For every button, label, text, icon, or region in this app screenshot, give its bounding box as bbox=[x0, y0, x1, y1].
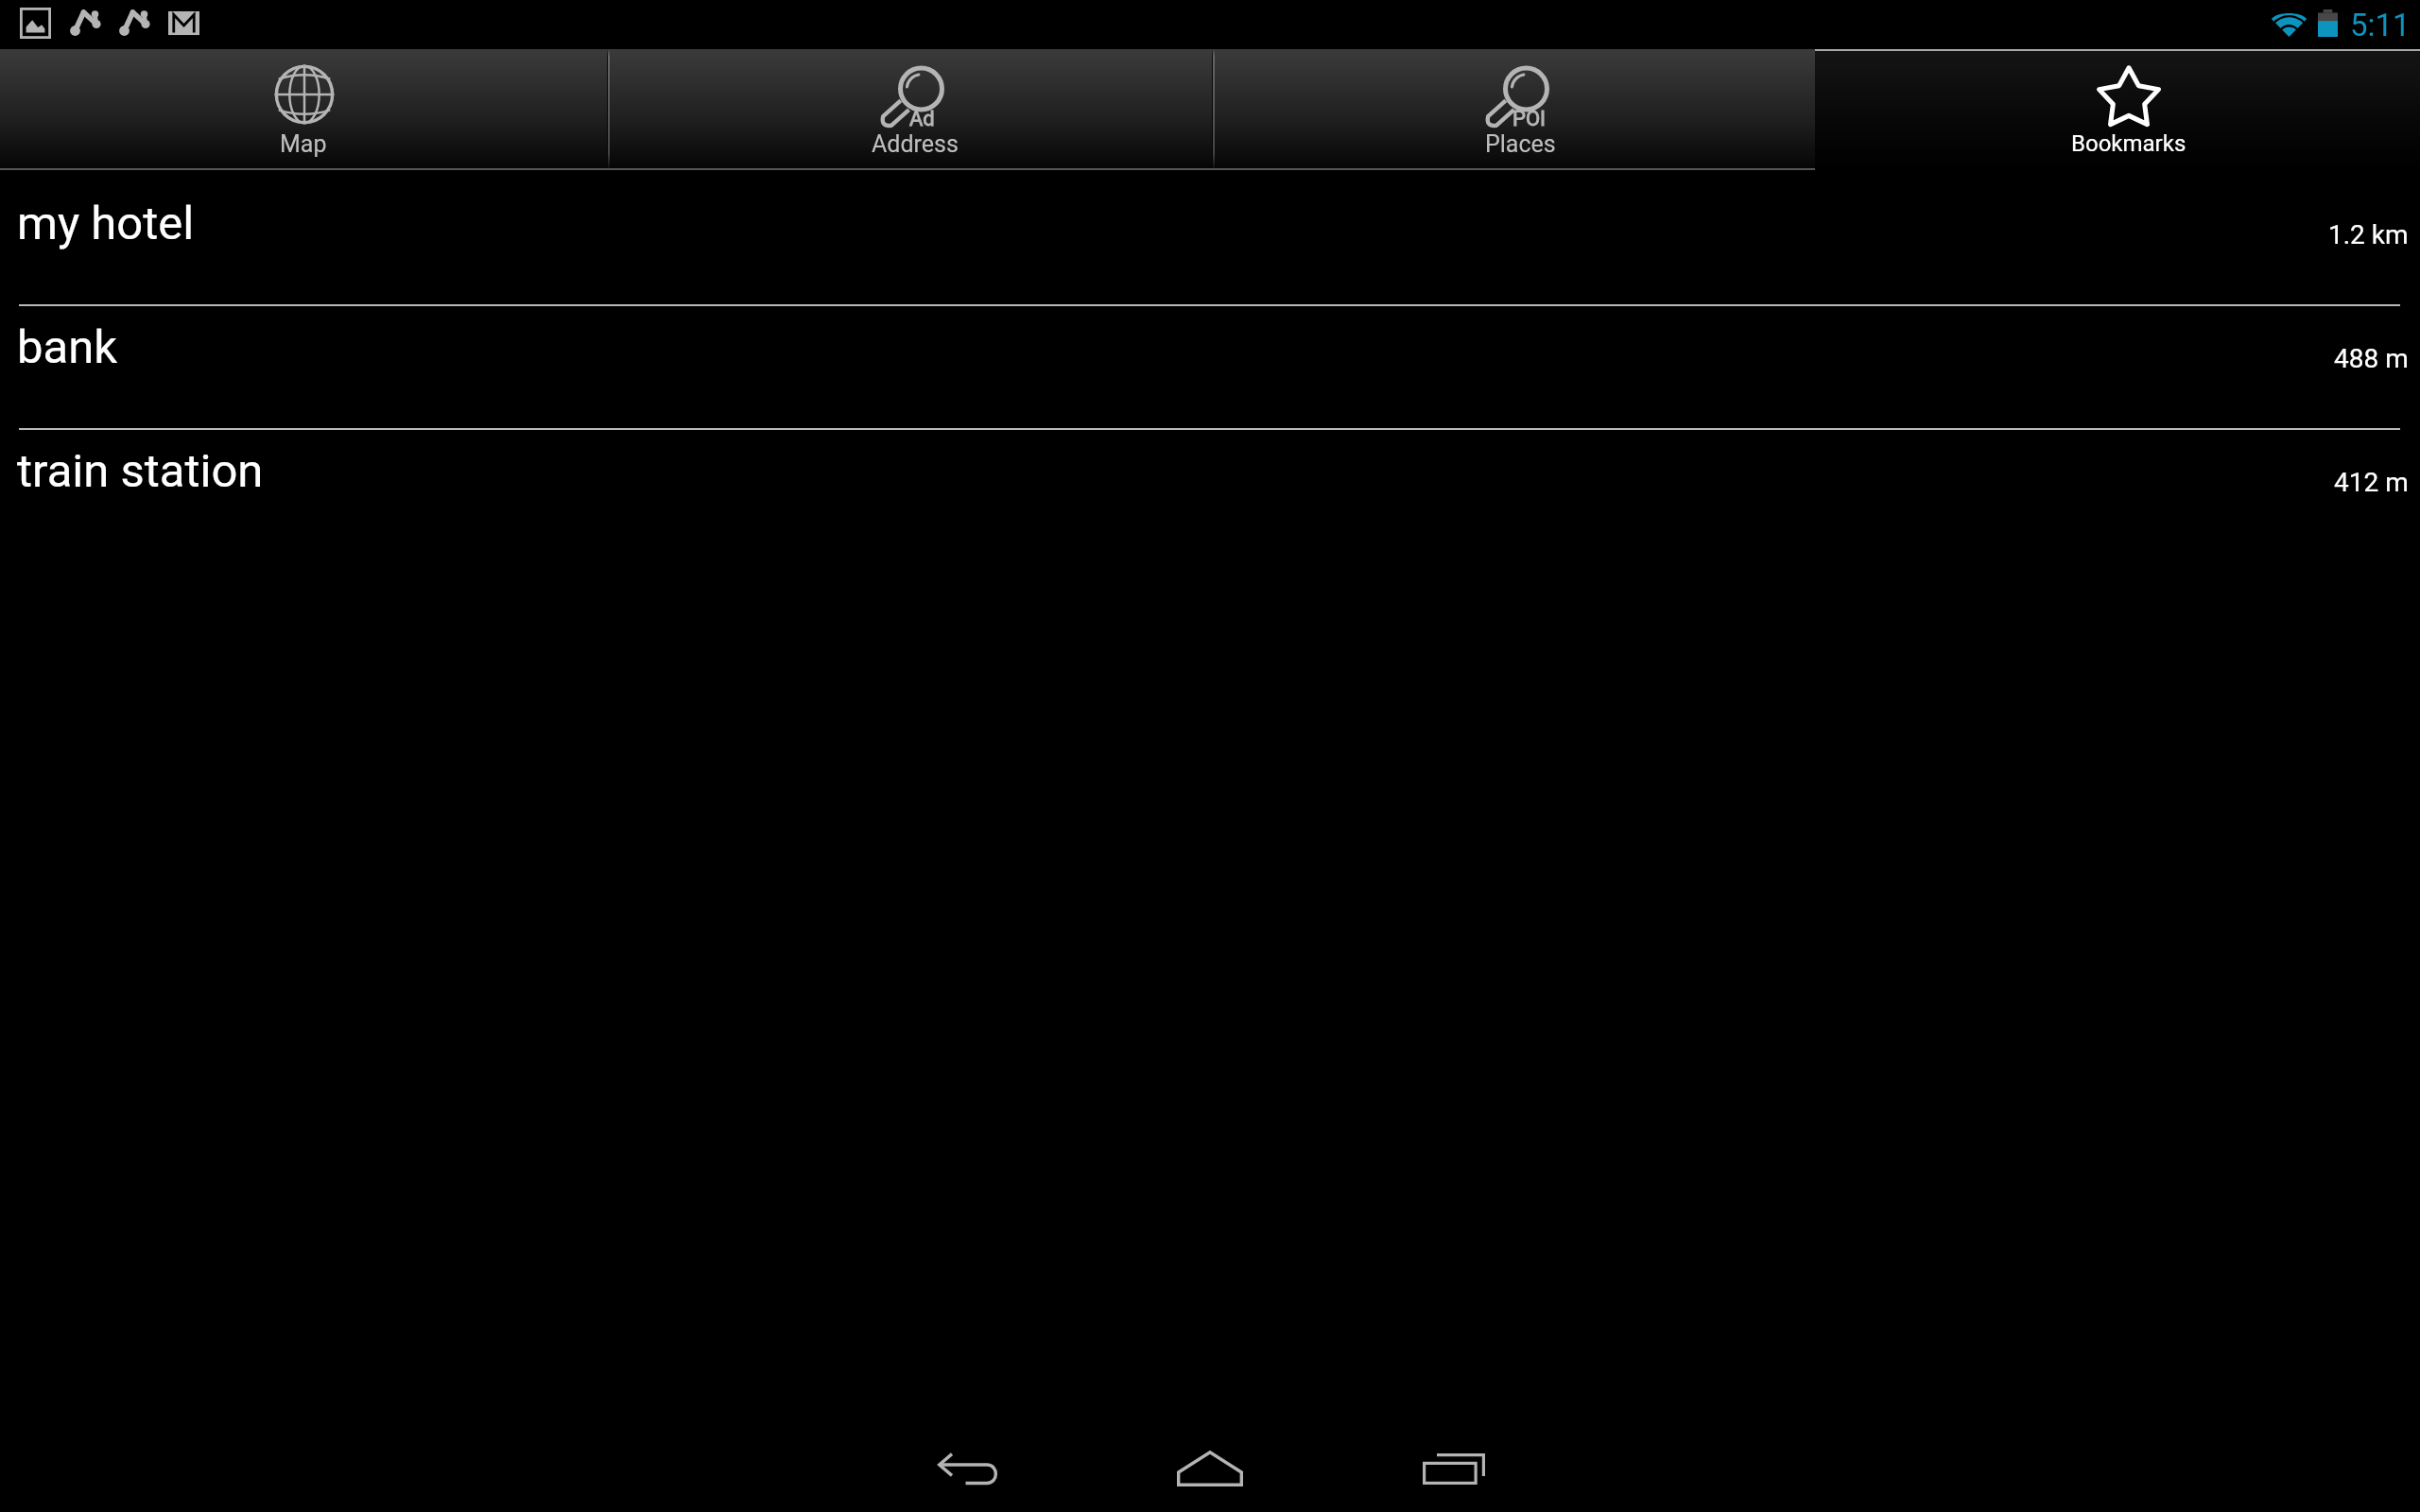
button[interactable]: Places bbox=[1210, 49, 1815, 170]
staticText: 5:11 bbox=[2350, 7, 2411, 43]
staticText: Address bbox=[872, 130, 959, 158]
button[interactable]: Recents bbox=[1345, 1406, 1559, 1512]
button[interactable]: my hotel bbox=[0, 170, 2420, 306]
staticText: train station bbox=[17, 444, 264, 498]
button[interactable]: Back bbox=[860, 1406, 1074, 1512]
staticText: POI bbox=[1512, 107, 1546, 131]
staticText: Map bbox=[280, 130, 327, 158]
staticText: 412 m bbox=[2334, 467, 2409, 498]
staticText: my hotel bbox=[17, 197, 195, 250]
button[interactable]: Bookmarks bbox=[1815, 49, 2420, 170]
button[interactable]: Home bbox=[1103, 1406, 1317, 1512]
button[interactable]: bank bbox=[0, 306, 2420, 430]
staticText: Bookmarks bbox=[2071, 130, 2187, 157]
staticText: Ad bbox=[909, 107, 935, 131]
button[interactable]: Map bbox=[0, 49, 605, 170]
staticText: Places bbox=[1485, 130, 1556, 158]
staticText: 1.2 km bbox=[2328, 219, 2409, 250]
staticText: 488 m bbox=[2334, 343, 2409, 374]
staticText: bank bbox=[17, 320, 118, 374]
button[interactable]: Address bbox=[605, 49, 1210, 170]
button[interactable]: train station bbox=[0, 430, 2420, 554]
